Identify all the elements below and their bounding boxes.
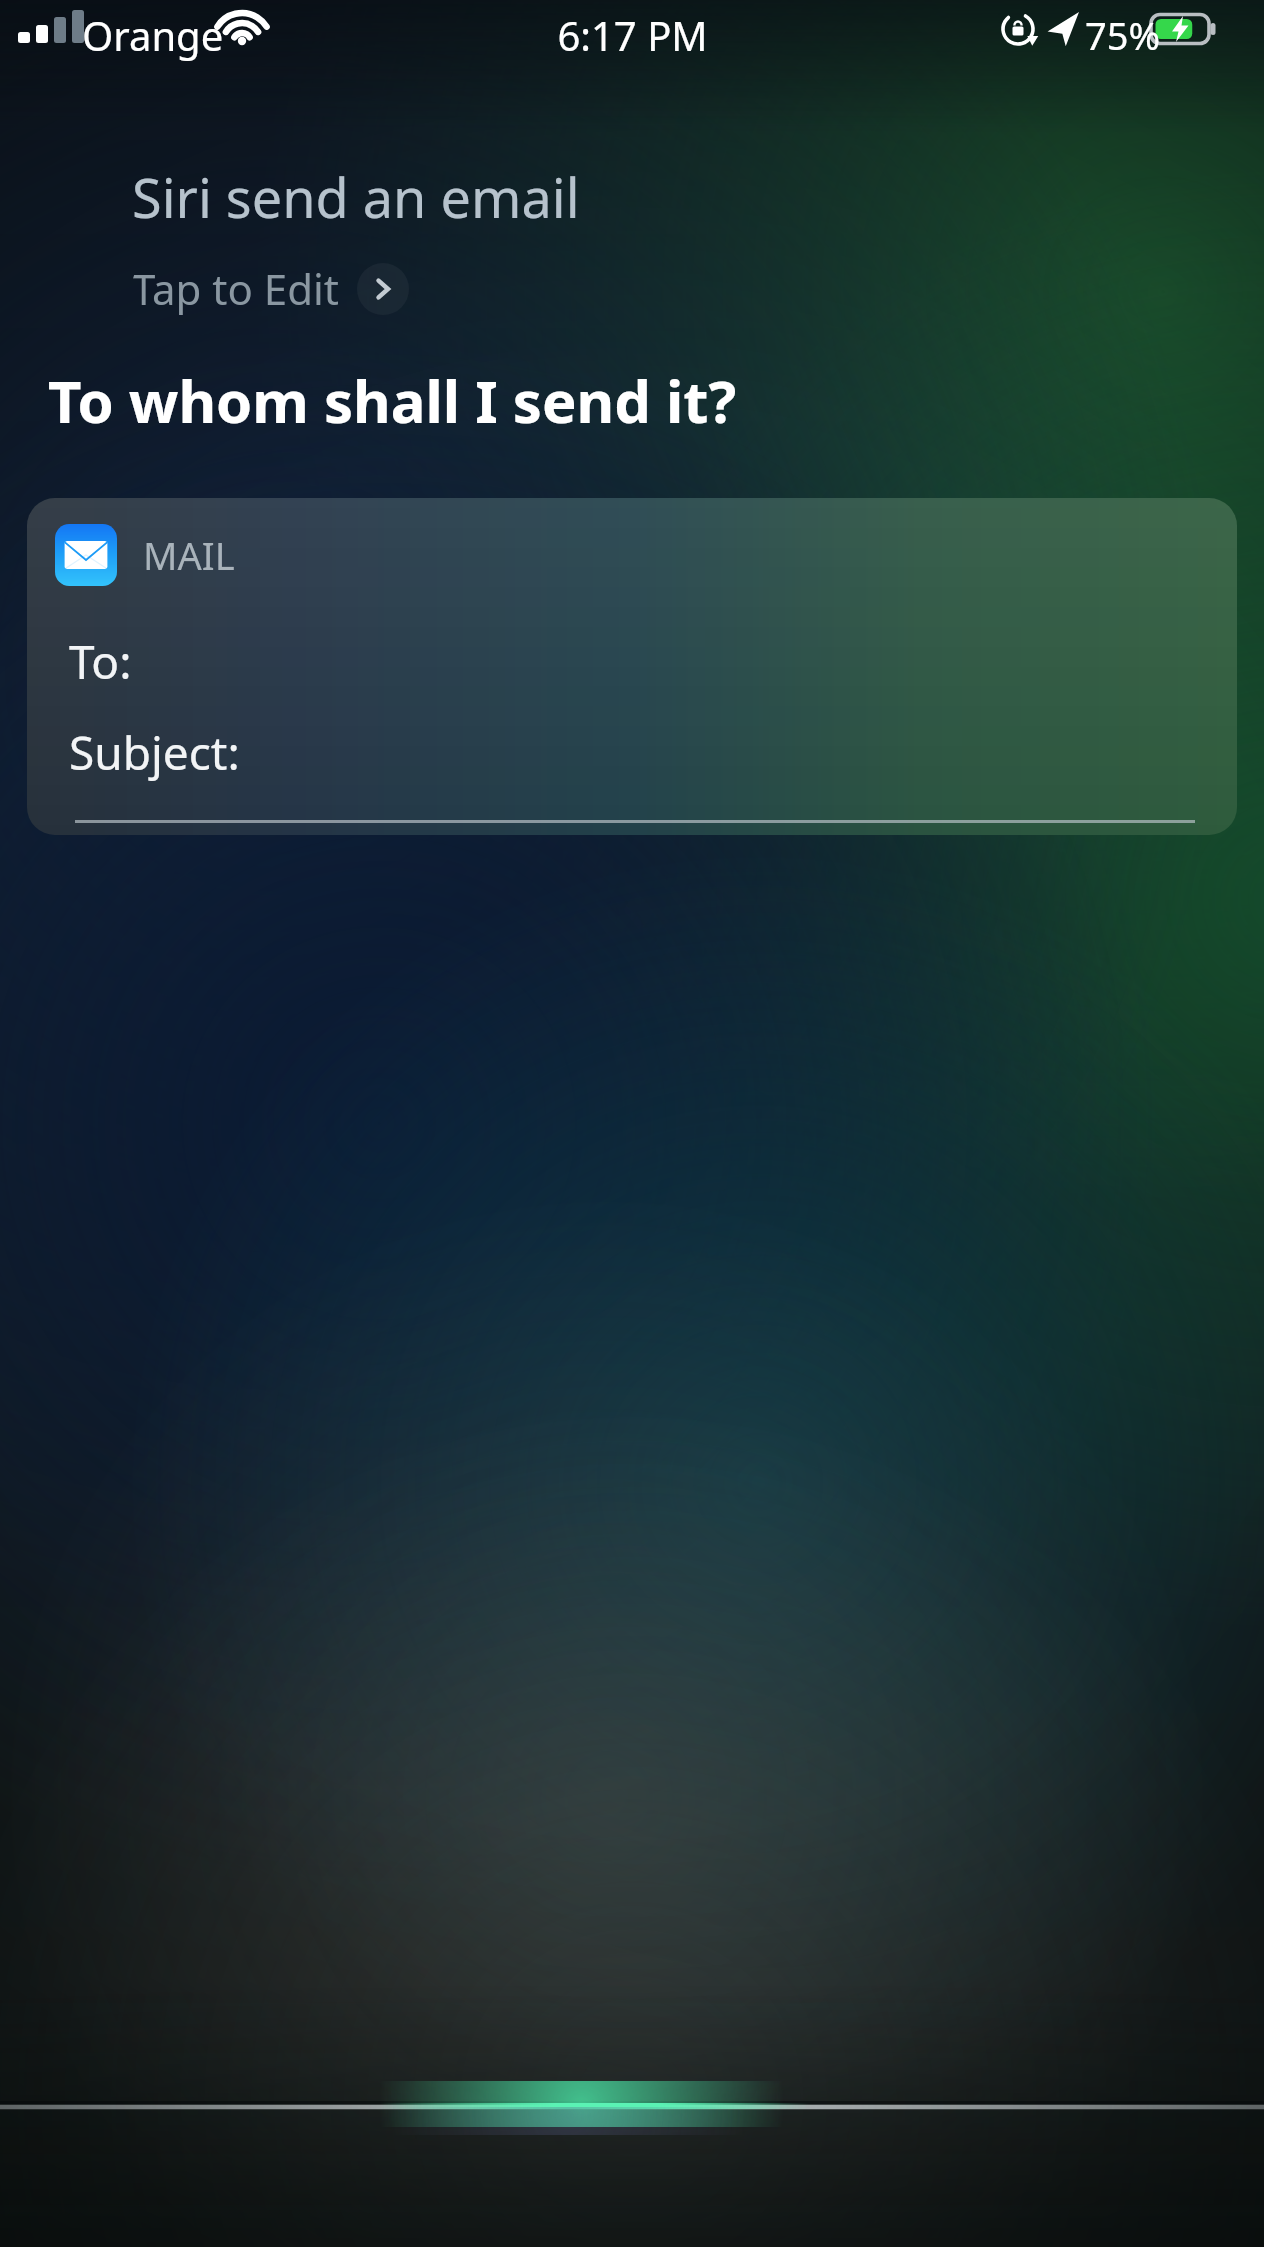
staticText: Subject: — [69, 721, 240, 784]
staticText: Orange — [82, 8, 224, 62]
staticText: To: — [69, 630, 132, 693]
staticText: 75% — [1085, 9, 1161, 61]
staticText: 6:17 PM — [557, 8, 708, 62]
other: Edit request — [357, 263, 409, 315]
button[interactable]: MAIL — [27, 498, 1237, 835]
button[interactable]: Tap to Edit — [132, 256, 421, 321]
staticText: Tap to Edit — [132, 260, 339, 317]
staticText: Siri send an email — [132, 160, 580, 234]
staticText: MAIL — [143, 529, 235, 581]
staticText: To whom shall I send it? — [48, 361, 737, 440]
